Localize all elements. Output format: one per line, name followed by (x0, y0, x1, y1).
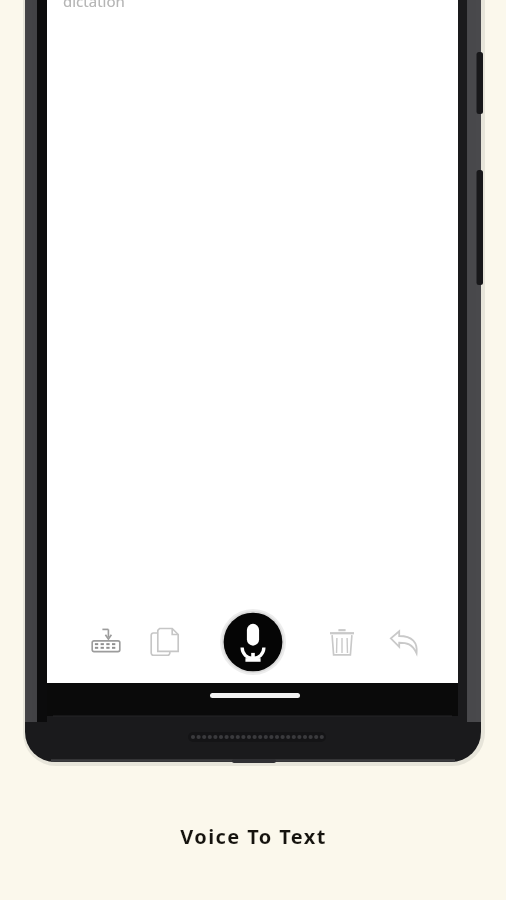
staticText: dictation (63, 0, 125, 11)
button[interactable]: Record voice (220, 609, 286, 675)
button[interactable]: Undo (382, 620, 426, 664)
button[interactable]: Delete (320, 620, 364, 664)
button[interactable]: Hide keyboard (84, 620, 128, 664)
staticText: Voice To Text (180, 823, 327, 850)
button[interactable]: Copy text (143, 620, 187, 664)
